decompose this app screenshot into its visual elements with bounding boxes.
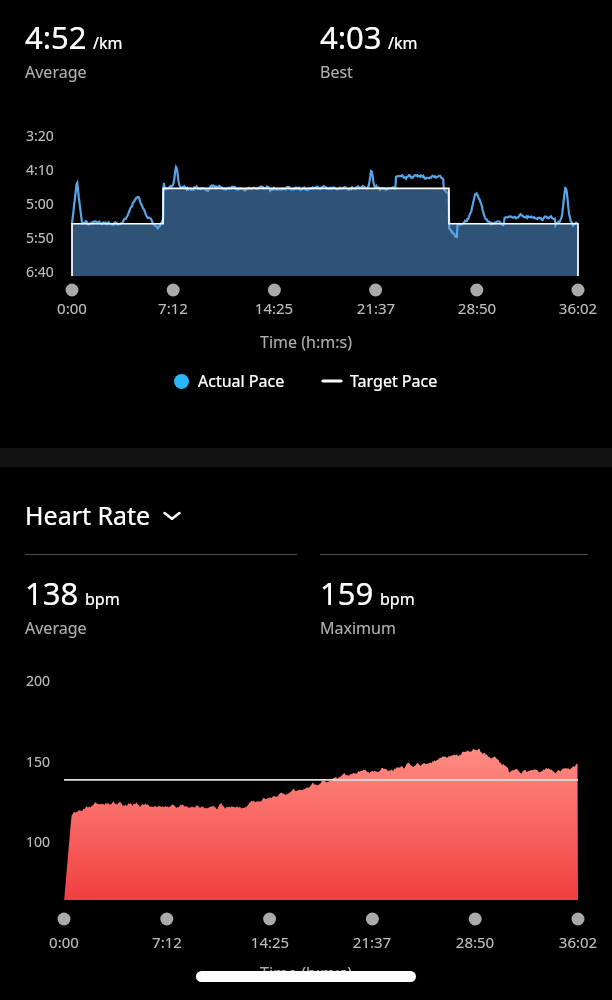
staticText: Time (h:m:s): [0, 962, 612, 984]
other: Collapse Heart Rate: [161, 504, 183, 526]
staticText: 138: [25, 572, 79, 614]
staticText: bpm: [380, 588, 415, 610]
staticText: 159: [320, 572, 374, 614]
staticText: 6:40: [26, 262, 54, 281]
staticText: 21:37: [346, 298, 406, 318]
staticText: 5:00: [26, 194, 54, 213]
staticText: 200: [26, 671, 51, 690]
staticText: 0:00: [34, 932, 94, 952]
staticText: 4:10: [26, 160, 54, 179]
staticText: 14:25: [244, 298, 304, 318]
staticText: Time (h:m:s): [0, 331, 612, 353]
staticText: 36:02: [548, 932, 608, 952]
staticText: 4:03: [320, 16, 382, 58]
staticText: Best: [320, 61, 353, 83]
staticText: Average: [25, 61, 87, 83]
staticText: Maximum: [320, 617, 396, 639]
staticText: 150: [26, 752, 51, 771]
button[interactable]: Target Pace: [323, 370, 438, 392]
staticText: 36:02: [548, 298, 608, 318]
staticText: /km: [388, 32, 418, 54]
staticText: 0:00: [42, 298, 102, 318]
staticText: Average: [25, 617, 87, 639]
button[interactable]: Actual Pace: [174, 370, 285, 392]
staticText: 7:12: [143, 298, 203, 318]
staticText: 21:37: [342, 932, 402, 952]
staticText: /km: [93, 32, 123, 54]
button[interactable]: Heart Rate: [25, 498, 183, 532]
staticText: 14:25: [240, 932, 300, 952]
staticText: 5:50: [26, 228, 54, 247]
staticText: 100: [26, 832, 51, 851]
staticText: Target Pace: [350, 370, 438, 392]
staticText: 28:50: [447, 298, 507, 318]
staticText: 7:12: [137, 932, 197, 952]
staticText: 3:20: [26, 126, 54, 145]
staticText: 4:52: [25, 16, 87, 58]
staticText: bpm: [85, 588, 120, 610]
staticText: Actual Pace: [198, 370, 285, 392]
staticText: Heart Rate: [25, 498, 151, 532]
staticText: 28:50: [445, 932, 505, 952]
